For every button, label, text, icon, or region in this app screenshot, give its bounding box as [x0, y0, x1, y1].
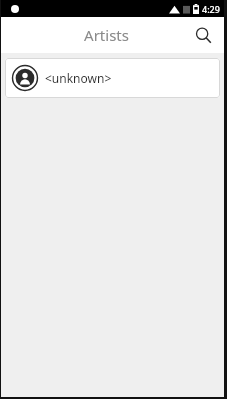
staticText: Artists	[84, 25, 129, 45]
staticText: <unknown>	[45, 70, 112, 86]
staticText: 4:29	[202, 3, 220, 15]
button[interactable]: Search	[188, 20, 218, 50]
button[interactable]: <unknown>	[5, 58, 220, 98]
